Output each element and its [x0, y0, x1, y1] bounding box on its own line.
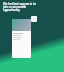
staticText: We bet last season is to join a renewabl… [3, 2, 39, 12]
button[interactable] [12, 19, 31, 58]
button[interactable]: Mail [31, 16, 37, 22]
